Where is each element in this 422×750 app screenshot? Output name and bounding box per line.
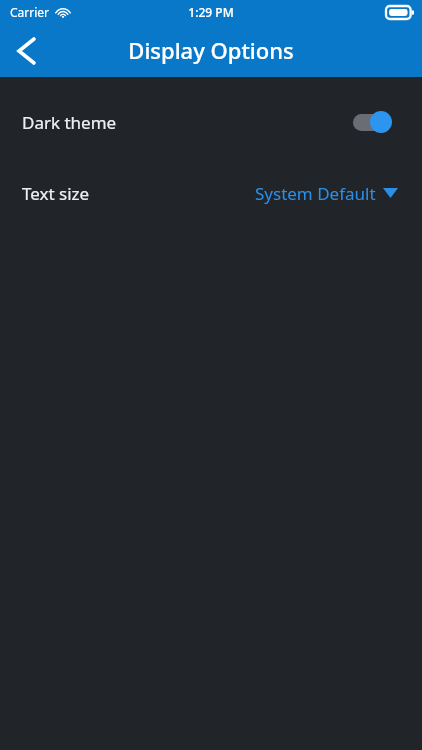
staticText: Dark theme: [22, 111, 117, 134]
button[interactable]: Dark theme toggle, on: [352, 111, 392, 133]
button[interactable]: Dark theme: [0, 99, 422, 145]
button[interactable]: Back: [0, 25, 52, 77]
staticText: Text size: [22, 182, 90, 205]
staticText: 1:29 PM: [188, 4, 234, 20]
button[interactable]: Text size: [0, 173, 422, 213]
staticText: Carrier: [10, 4, 50, 20]
staticText: Display Options: [128, 35, 294, 65]
staticText: System Default: [255, 182, 376, 205]
